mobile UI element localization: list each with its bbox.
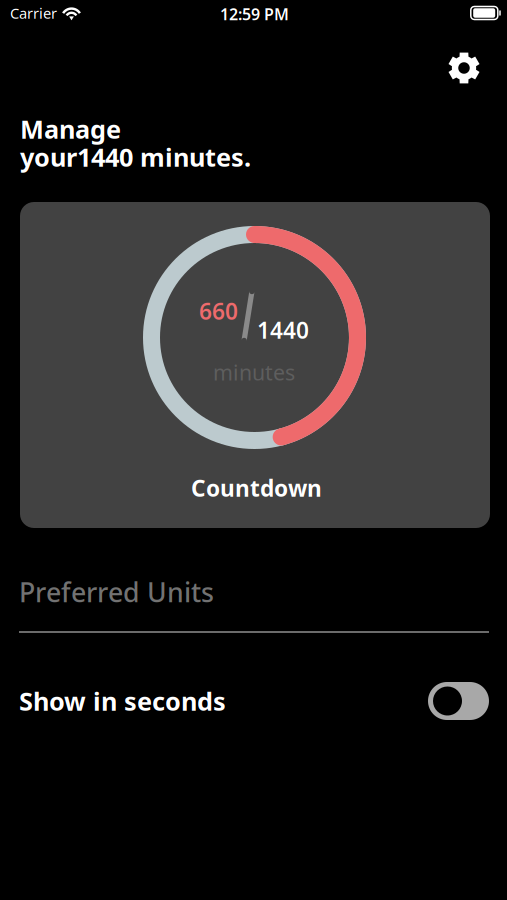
staticText: your1440 minutes. bbox=[20, 140, 251, 174]
button[interactable]: Preferred Units bbox=[19, 579, 489, 633]
staticText: Carrier bbox=[10, 3, 57, 23]
staticText: Preferred Units bbox=[19, 574, 214, 610]
staticText: Countdown bbox=[191, 473, 322, 503]
staticText: Show in seconds bbox=[19, 684, 226, 718]
staticText: 1440 bbox=[257, 315, 309, 345]
staticText: Manage bbox=[20, 112, 121, 146]
staticText: 12:59 PM bbox=[220, 3, 289, 25]
button[interactable]: Settings bbox=[441, 45, 487, 91]
staticText: minutes bbox=[213, 358, 295, 386]
staticText: 660 bbox=[199, 296, 238, 326]
button[interactable]: Show in seconds bbox=[428, 682, 489, 720]
